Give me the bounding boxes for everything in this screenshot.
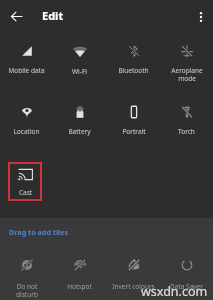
- staticText: Drag to add tiles: [9, 227, 69, 237]
- button[interactable]: Portrait: [107, 98, 160, 144]
- button[interactable]: Aeroplane mode: [160, 37, 213, 83]
- staticText: Portrait: [122, 127, 146, 136]
- staticText: Mobile data: [8, 66, 45, 75]
- button[interactable]: Data Saver: [160, 251, 213, 297]
- staticText: wsxdn.com: [141, 283, 208, 300]
- button[interactable]: Invert colours: [107, 251, 160, 297]
- staticText: Invert colours: [112, 282, 155, 291]
- button[interactable]: Do not disturb: [0, 251, 53, 297]
- staticText: Data Saver: [170, 282, 203, 291]
- button[interactable]: Mobile data: [0, 37, 53, 83]
- button[interactable]: More options: [191, 7, 211, 27]
- staticText: Cast: [19, 188, 33, 197]
- staticText: Hotspot: [67, 282, 92, 291]
- staticText: Aeroplane mode: [171, 66, 203, 83]
- staticText: Torch: [178, 127, 195, 136]
- button[interactable]: Bluetooth: [107, 37, 160, 83]
- button[interactable]: Back: [6, 6, 26, 26]
- staticText: Do not disturb: [16, 282, 38, 297]
- button[interactable]: Torch: [160, 98, 213, 144]
- staticText: Wi-Fi: [72, 67, 87, 76]
- staticText: Edit: [42, 8, 64, 23]
- staticText: Battery: [68, 127, 91, 136]
- staticText: Bluetooth: [118, 66, 149, 75]
- button[interactable]: Location: [0, 98, 53, 144]
- button[interactable]: Wi-Fi: [53, 37, 106, 83]
- button[interactable]: Hotspot: [53, 251, 106, 297]
- staticText: Location: [13, 127, 40, 136]
- button[interactable]: Battery: [53, 98, 106, 144]
